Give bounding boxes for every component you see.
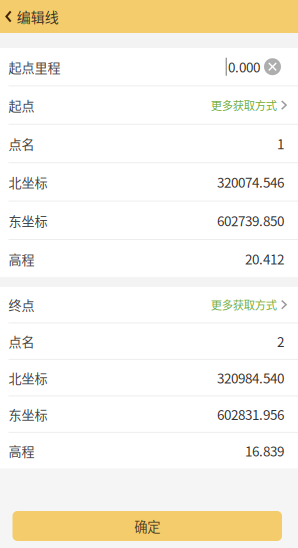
staticText: 16.839 <box>245 441 284 460</box>
button[interactable]: 编辑线 <box>0 0 69 33</box>
button[interactable]: 清除 <box>260 52 285 82</box>
staticText: 高程 <box>8 249 34 268</box>
button[interactable]: 起点 <box>0 86 298 124</box>
staticText: 更多获取方式 <box>211 296 277 313</box>
staticText: 320984.540 <box>217 368 284 387</box>
staticText: 0.000 <box>228 57 260 76</box>
staticText: 320074.546 <box>217 172 284 192</box>
staticText: 更多获取方式 <box>211 97 277 113</box>
staticText: 编辑线 <box>17 6 59 27</box>
staticText: 北坐标 <box>8 368 47 387</box>
button[interactable]: 确定 <box>12 511 282 541</box>
staticText: 点名 <box>8 134 34 153</box>
staticText: 602831.956 <box>217 404 284 424</box>
staticText: 602739.850 <box>217 211 284 230</box>
staticText: 起点 <box>8 96 34 114</box>
staticText: 北坐标 <box>8 172 47 191</box>
staticText: 确定 <box>134 516 160 536</box>
staticText: 终点 <box>8 295 34 314</box>
staticText: 东坐标 <box>8 405 47 424</box>
staticText: 高程 <box>8 441 34 460</box>
staticText: 2 <box>277 331 284 351</box>
staticText: 1 <box>277 134 284 153</box>
staticText: 起点里程 <box>8 57 60 76</box>
staticText: 20.412 <box>245 249 284 268</box>
button[interactable]: 终点 <box>0 287 298 322</box>
staticText: 点名 <box>8 332 34 351</box>
staticText: 东坐标 <box>8 211 47 230</box>
